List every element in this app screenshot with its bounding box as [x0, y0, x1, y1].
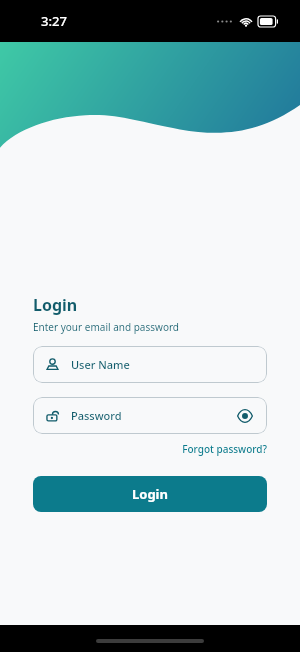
staticText: User Name	[71, 357, 130, 372]
staticText: Login	[132, 485, 168, 503]
staticText: Enter your email and password	[33, 320, 180, 334]
staticText: 3:27	[41, 12, 67, 30]
button[interactable]: Password	[33, 397, 267, 434]
button[interactable]: Show password	[235, 406, 255, 426]
button[interactable]: Login	[33, 476, 267, 512]
staticText: Password	[71, 408, 122, 423]
button[interactable]: Forgot password?	[182, 442, 267, 456]
staticText: Login	[33, 294, 78, 316]
button[interactable]: User Name	[33, 346, 267, 383]
